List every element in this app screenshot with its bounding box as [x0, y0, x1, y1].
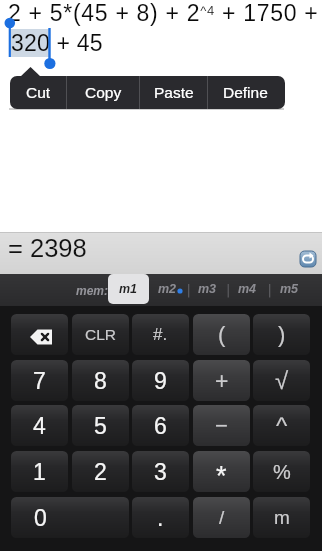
- staticText: 4: [33, 413, 46, 439]
- button[interactable]: m3: [190, 274, 224, 304]
- staticText: m4: [238, 282, 257, 296]
- staticText: m2: [158, 282, 177, 296]
- staticText: m1: [119, 282, 138, 296]
- staticText: 5: [94, 413, 107, 439]
- staticText: m: [274, 507, 290, 528]
- staticText: Copy: [85, 84, 122, 101]
- staticText: −: [215, 413, 228, 438]
- button[interactable]: 8: [72, 360, 129, 401]
- staticText: 1: [33, 459, 46, 485]
- button[interactable]: m4: [230, 274, 264, 304]
- button[interactable]: m: [253, 497, 310, 538]
- staticText: 9: [154, 368, 167, 394]
- button[interactable]: −: [193, 405, 250, 446]
- button[interactable]: ): [253, 314, 310, 355]
- staticText: #.: [153, 325, 168, 344]
- button[interactable]: m5: [272, 274, 306, 304]
- staticText: CLR: [85, 326, 117, 343]
- button[interactable]: +: [193, 360, 250, 401]
- button[interactable]: #.: [132, 314, 189, 355]
- staticText: 2 + 5*(45 + 8) + 2^4 + 1750 +: [8, 0, 319, 26]
- button[interactable]: .: [132, 497, 189, 538]
- button[interactable]: Define: [208, 76, 283, 109]
- staticText: 8: [94, 368, 107, 394]
- staticText: /: [219, 507, 225, 528]
- staticText: %: [273, 461, 291, 483]
- staticText: Paste: [154, 84, 194, 101]
- button[interactable]: 7: [11, 360, 68, 401]
- button[interactable]: 5: [72, 405, 129, 446]
- button[interactable]: 3: [132, 451, 189, 492]
- staticText: 320 + 45: [11, 30, 103, 56]
- staticText: ): [278, 322, 286, 347]
- button[interactable]: 9: [132, 360, 189, 401]
- button[interactable]: [300, 251, 316, 267]
- button[interactable]: CLR: [72, 314, 129, 355]
- button[interactable]: %: [253, 451, 310, 492]
- staticText: 6: [154, 413, 167, 439]
- button[interactable]: [11, 314, 68, 355]
- button[interactable]: Copy: [67, 76, 139, 109]
- button[interactable]: /: [193, 497, 250, 538]
- staticText: 0: [34, 505, 47, 531]
- staticText: 3: [154, 459, 167, 485]
- staticText: m5: [280, 282, 299, 296]
- staticText: Cut: [26, 84, 51, 101]
- staticText: 7: [33, 368, 46, 394]
- button[interactable]: 2: [72, 451, 129, 492]
- staticText: 2: [94, 459, 107, 485]
- button[interactable]: m1: [108, 274, 149, 304]
- button[interactable]: √: [253, 360, 310, 401]
- button[interactable]: Cut: [10, 76, 66, 109]
- staticText: m3: [198, 282, 217, 296]
- staticText: .: [157, 505, 164, 531]
- button[interactable]: *: [193, 451, 250, 492]
- button[interactable]: 1: [11, 451, 68, 492]
- staticText: ^: [276, 412, 288, 439]
- button[interactable]: 6: [132, 405, 189, 446]
- button[interactable]: 0: [11, 497, 129, 538]
- staticText: (: [218, 322, 226, 347]
- button[interactable]: Paste: [140, 76, 207, 109]
- staticText: √: [275, 367, 289, 394]
- staticText: Define: [223, 84, 268, 101]
- button[interactable]: m2: [150, 274, 184, 304]
- staticText: mem:: [76, 284, 109, 297]
- staticText: = 2398: [8, 234, 87, 262]
- button[interactable]: ^: [253, 405, 310, 446]
- button[interactable]: (: [193, 314, 250, 355]
- staticText: +: [215, 368, 229, 394]
- staticText: *: [216, 461, 227, 491]
- button[interactable]: 4: [11, 405, 68, 446]
